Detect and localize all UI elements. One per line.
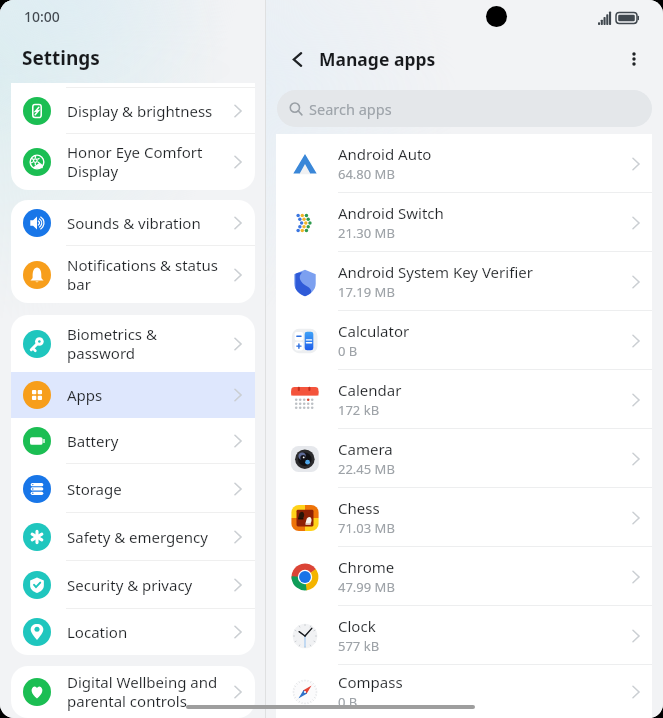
staticText: 22.45 MB [338, 460, 395, 478]
button[interactable]: Chrome [276, 547, 652, 606]
staticText: Biometrics & password [67, 324, 230, 364]
staticText: 0 B [338, 342, 358, 360]
staticText: Android Switch [338, 203, 444, 223]
staticText: 17.19 MB [338, 283, 395, 301]
button[interactable]: Apps [11, 372, 255, 418]
button[interactable]: Calculator [276, 311, 652, 370]
staticText: Chrome [338, 557, 395, 577]
staticText: 10:00 [24, 7, 60, 26]
staticText: Manage apps [319, 47, 436, 71]
staticText: 172 kB [338, 401, 380, 419]
button[interactable]: Android Auto [276, 134, 652, 193]
staticText: Apps [67, 385, 230, 405]
button[interactable]: Storage [11, 464, 255, 513]
button[interactable]: Back [284, 46, 310, 72]
staticText: Chess [338, 498, 380, 518]
button[interactable]: Location [11, 609, 255, 655]
staticText: 21.30 MB [338, 224, 395, 242]
button[interactable]: Search apps [277, 90, 652, 127]
button[interactable]: Digital Wellbeing and parental controls [11, 666, 255, 718]
button[interactable]: Android System Key Verifier [276, 252, 652, 311]
button[interactable]: Honor Eye Comfort Display [11, 134, 255, 190]
staticText: Safety & emergency [67, 527, 230, 547]
button[interactable]: Security & privacy [11, 561, 255, 609]
button[interactable]: Chess [276, 488, 652, 547]
staticText: Display & brightness [67, 101, 230, 121]
button[interactable]: Notifications & status bar [11, 246, 255, 303]
staticText: Search apps [309, 99, 392, 119]
staticText: Android System Key Verifier [338, 262, 533, 282]
staticText: Clock [338, 616, 376, 636]
staticText: Honor Eye Comfort Display [67, 142, 230, 182]
staticText: Android Auto [338, 144, 432, 164]
staticText: Calculator [338, 321, 410, 341]
staticText: 64.80 MB [338, 165, 395, 183]
staticText: 71.03 MB [338, 519, 395, 537]
button[interactable]: Compass [276, 665, 652, 718]
staticText: Calendar [338, 380, 402, 400]
button[interactable]: More options [620, 45, 648, 73]
button[interactable]: Safety & emergency [11, 513, 255, 561]
button[interactable]: Camera [276, 429, 652, 488]
button[interactable]: Calendar [276, 370, 652, 429]
staticText: Sounds & vibration [67, 213, 230, 233]
button[interactable]: Clock [276, 606, 652, 665]
button[interactable]: Biometrics & password [11, 315, 255, 372]
staticText: Location [67, 622, 230, 642]
button[interactable]: Android Switch [276, 193, 652, 252]
staticText: Settings [22, 45, 100, 71]
staticText: Battery [67, 431, 230, 451]
staticText: 47.99 MB [338, 578, 395, 596]
staticText: 577 kB [338, 637, 380, 655]
staticText: Digital Wellbeing and parental controls [67, 672, 230, 712]
staticText: Notifications & status bar [67, 255, 230, 295]
button[interactable]: Battery [11, 418, 255, 464]
staticText: Compass [338, 672, 403, 692]
staticText: Camera [338, 439, 393, 459]
button[interactable]: Sounds & vibration [11, 200, 255, 246]
button[interactable]: Display & brightness [11, 88, 255, 134]
staticText: 0 B [338, 693, 358, 711]
staticText: Security & privacy [67, 575, 230, 595]
staticText: Storage [67, 479, 230, 499]
